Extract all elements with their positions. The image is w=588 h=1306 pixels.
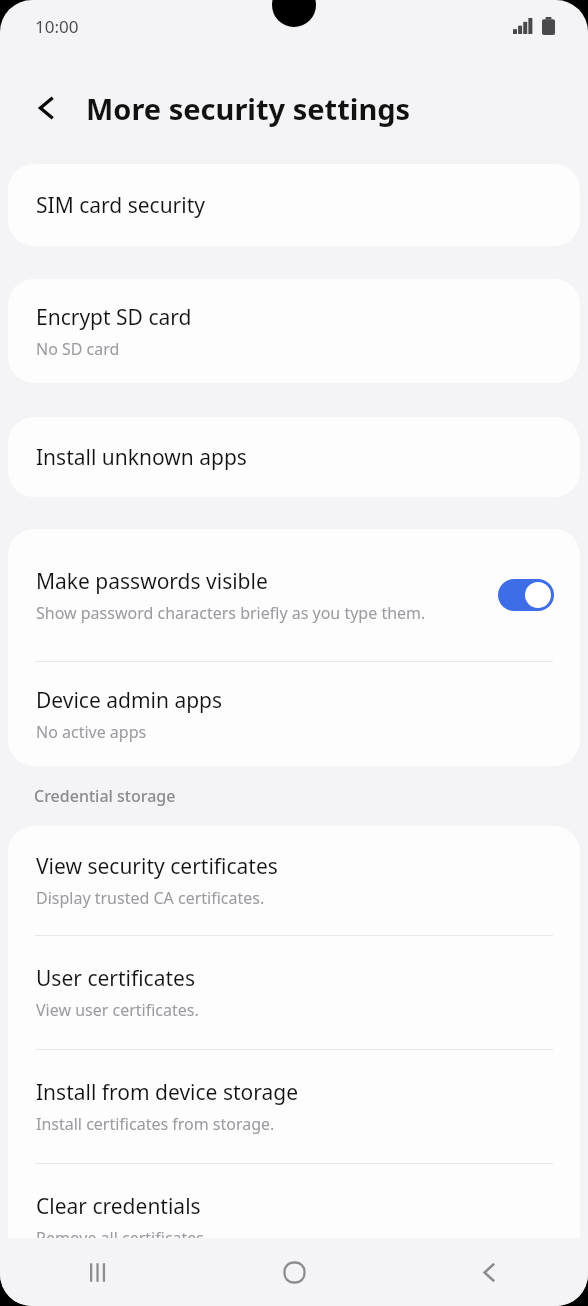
staticText: Remove all certificates. — [36, 1227, 209, 1238]
staticText: More security settings — [86, 89, 411, 128]
button[interactable]: User certificates — [8, 936, 580, 1049]
staticText: User certificates — [36, 964, 195, 993]
staticText: Clear credentials — [36, 1192, 201, 1221]
button[interactable]: Install unknown apps — [8, 417, 580, 497]
staticText: No SD card — [36, 338, 120, 360]
staticText: Make passwords visible — [36, 567, 268, 596]
staticText: Install unknown apps — [36, 443, 247, 472]
button[interactable]: View security certificates — [8, 826, 580, 935]
button[interactable]: Install from device storage — [8, 1050, 580, 1163]
staticText: 10:00 — [35, 15, 79, 38]
button[interactable]: Clear credentials — [8, 1164, 580, 1238]
staticText: Device admin apps — [36, 686, 223, 715]
staticText: Install from device storage — [36, 1078, 299, 1107]
staticText: Install certificates from storage. — [36, 1113, 275, 1135]
button[interactable]: Back — [392, 1238, 588, 1306]
button[interactable]: Device admin apps — [8, 662, 580, 766]
staticText: No active apps — [36, 721, 147, 743]
button[interactable]: Navigate up — [20, 81, 74, 135]
button[interactable]: Encrypt SD card — [8, 279, 580, 383]
staticText: Credential storage — [34, 785, 176, 807]
button[interactable]: Make passwords visible — [8, 529, 580, 661]
staticText: SIM card security — [36, 191, 205, 220]
staticText: View user certificates. — [36, 999, 199, 1021]
staticText: View security certificates — [36, 852, 278, 881]
staticText: Display trusted CA certificates. — [36, 887, 265, 909]
staticText: Encrypt SD card — [36, 303, 192, 332]
button[interactable]: SIM card security — [8, 164, 580, 246]
button[interactable]: Make passwords visible, on — [498, 579, 554, 611]
button[interactable]: Home — [196, 1238, 392, 1306]
button[interactable]: Recents — [0, 1238, 196, 1306]
staticText: Show password characters briefly as you … — [36, 602, 426, 624]
